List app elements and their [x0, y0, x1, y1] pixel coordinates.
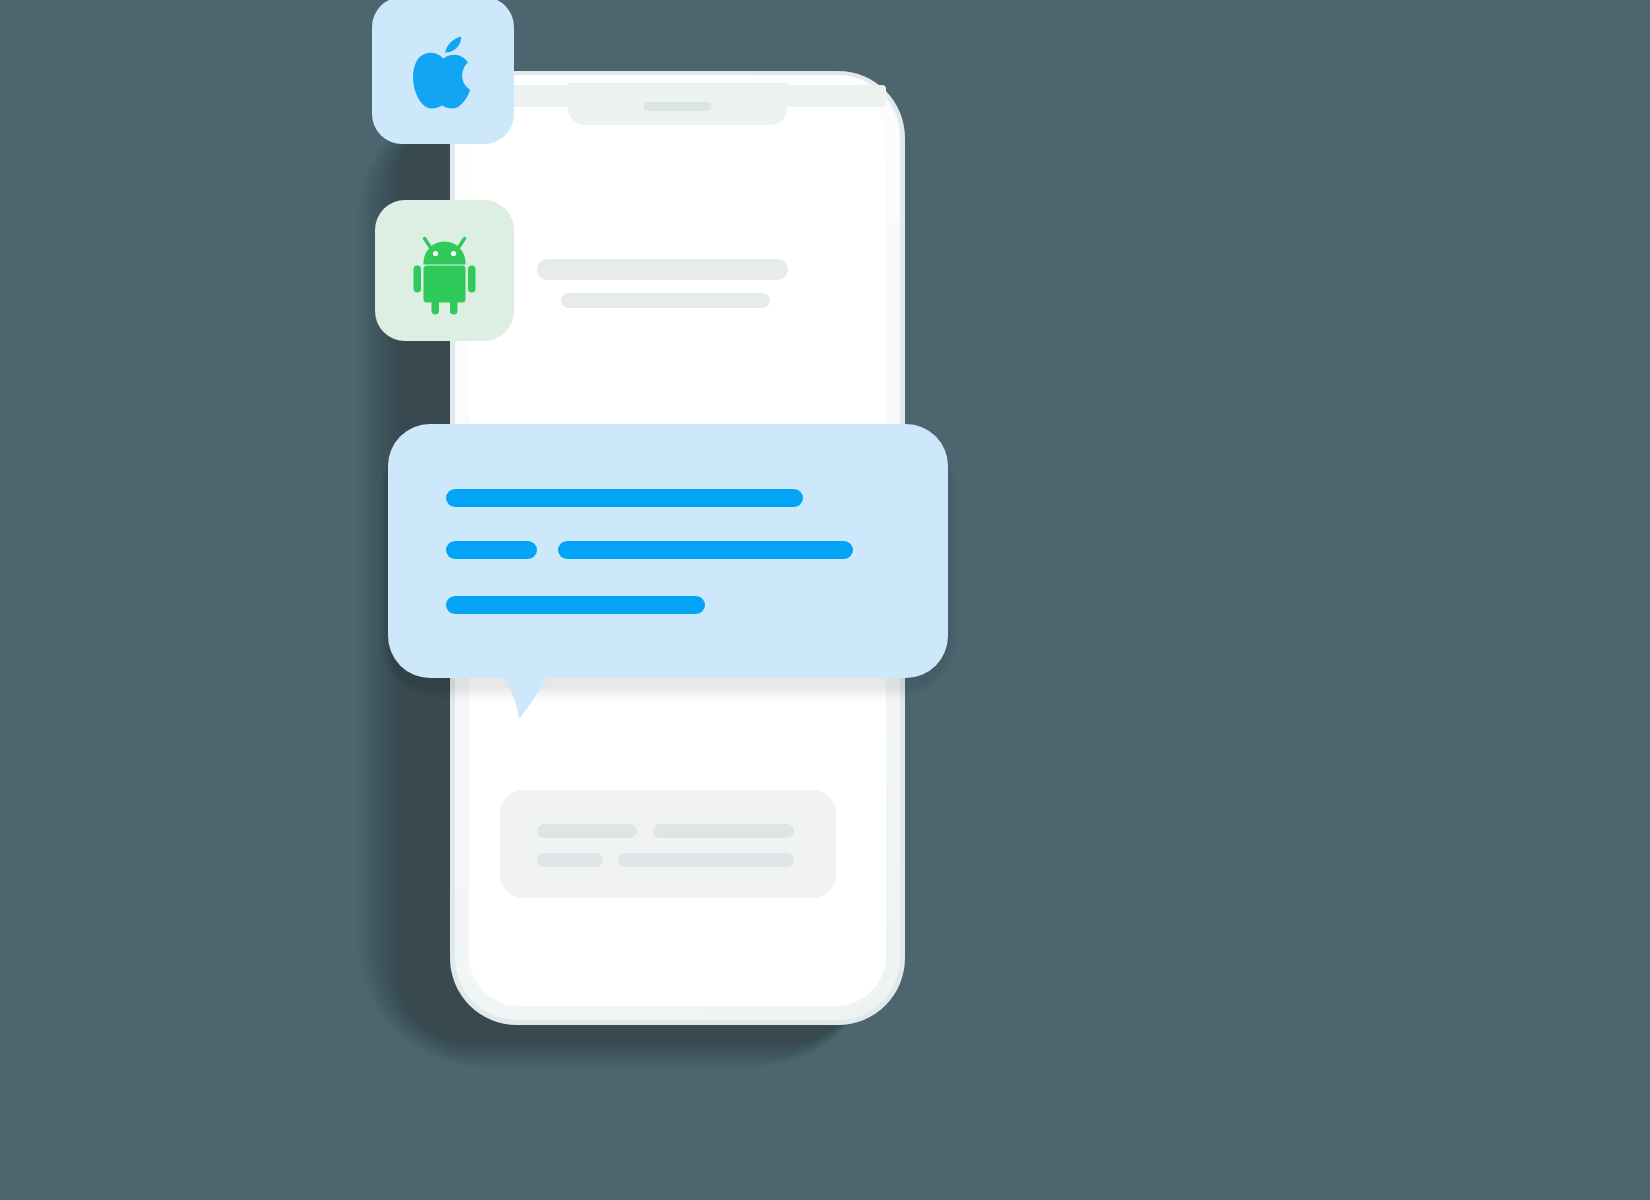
button[interactable]: Android app platform [375, 200, 514, 341]
button[interactable]: iOS app platform [372, 0, 514, 144]
